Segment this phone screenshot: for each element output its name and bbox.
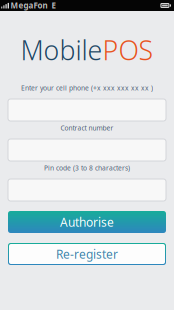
staticText: Enter your cell phone (+x xxx xxx xx xx … [21, 84, 153, 92]
staticText: Authorise [60, 214, 114, 230]
staticText: E [51, 0, 55, 11]
staticText: POS [102, 32, 153, 68]
staticText: Re-register [56, 246, 118, 262]
button[interactable]: Re-register [0, 243, 174, 265]
staticText: Contract number [60, 124, 113, 132]
staticText: Pin code (3 to 8 characters) [44, 164, 130, 172]
staticText: Mobile [20, 32, 102, 68]
button[interactable]: Authorise [0, 211, 174, 233]
staticText: MegaFon [10, 0, 47, 11]
